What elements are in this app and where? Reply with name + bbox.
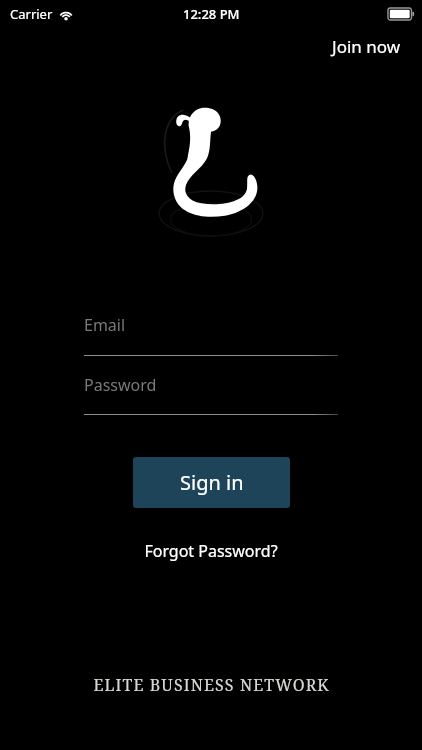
staticText: Password	[84, 374, 157, 396]
staticText: Sign in	[180, 469, 244, 496]
staticText: Join now	[332, 35, 401, 58]
staticText: 12:28 PM	[183, 5, 240, 23]
button[interactable]: Email	[84, 307, 338, 356]
staticText: Carrier	[10, 5, 53, 23]
staticText: Forgot Password?	[144, 540, 278, 562]
button[interactable]: Forgot Password?	[130, 536, 292, 566]
button[interactable]: Password	[84, 367, 338, 415]
button[interactable]: Sign in	[133, 457, 290, 508]
staticText: ELITE BUSINESS NETWORK	[93, 674, 330, 696]
button[interactable]: Join now	[311, 31, 422, 62]
staticText: Email	[84, 314, 126, 336]
